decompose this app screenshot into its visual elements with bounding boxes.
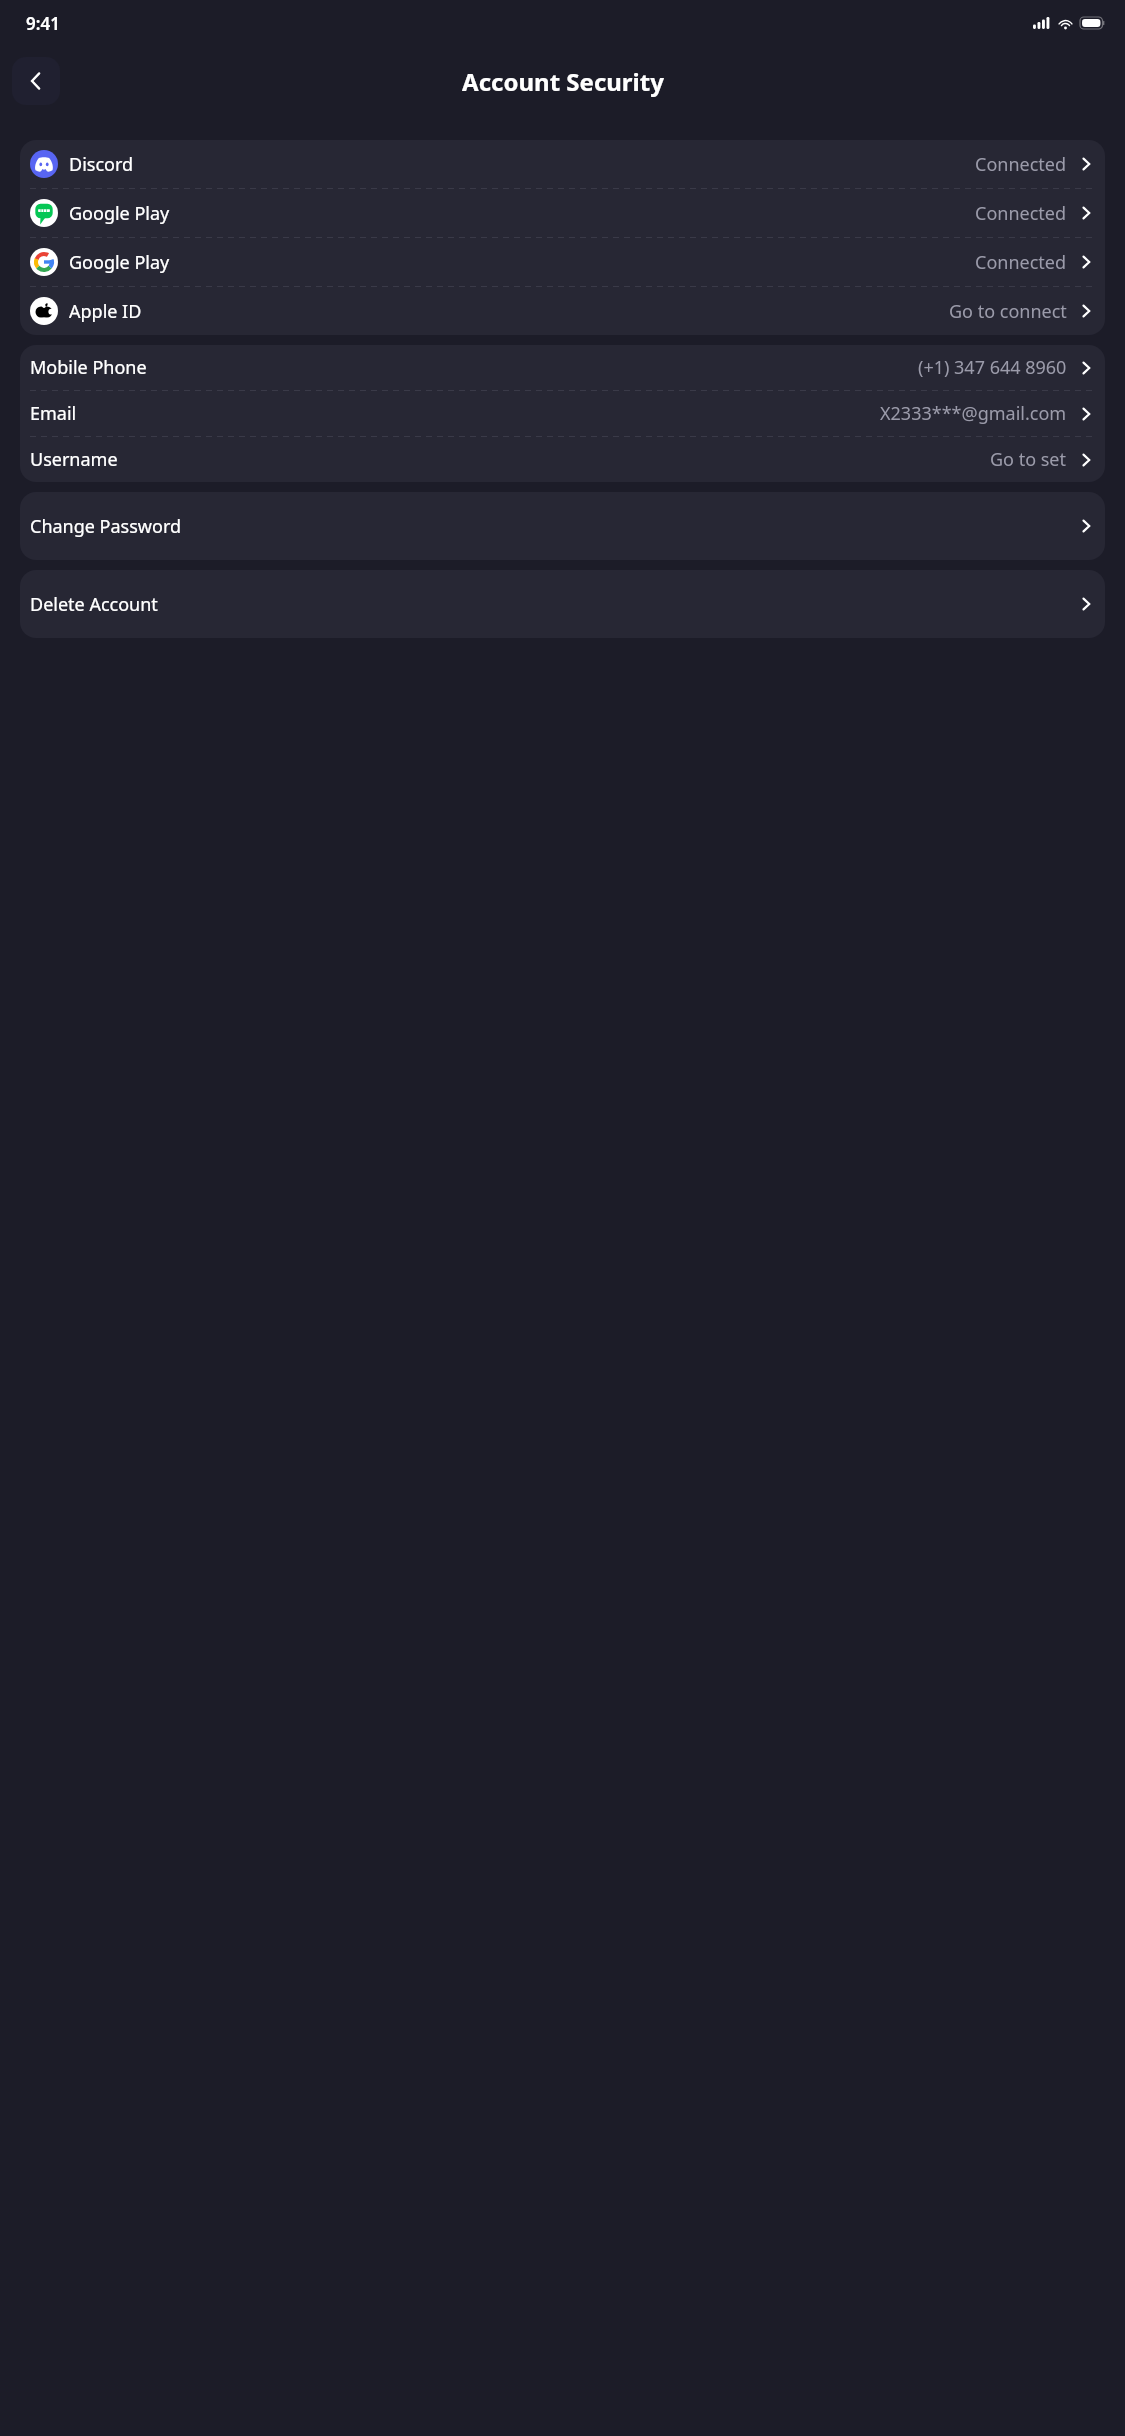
staticText: Apple ID	[69, 299, 142, 324]
staticText: 9:41	[26, 12, 60, 35]
staticText: Connected	[975, 152, 1067, 177]
staticText: Change Password	[30, 514, 182, 539]
staticText: Delete Account	[30, 592, 158, 617]
staticText: Connected	[975, 201, 1067, 226]
staticText: Go to connect	[949, 299, 1067, 324]
button[interactable]: Discord	[20, 140, 1105, 188]
staticText: (+1) 347 644 8960	[918, 355, 1067, 380]
button[interactable]: Back	[12, 57, 60, 105]
button[interactable]: Delete Account	[20, 570, 1105, 638]
button[interactable]: Apple ID	[20, 287, 1105, 335]
staticText: Discord	[69, 152, 134, 177]
staticText: Google Play	[69, 201, 170, 226]
button[interactable]: Username	[20, 437, 1105, 482]
staticText: Google Play	[69, 250, 170, 275]
staticText: Connected	[975, 250, 1067, 275]
button[interactable]: Mobile Phone	[20, 345, 1105, 390]
button[interactable]: Google Play	[20, 189, 1105, 237]
staticText: Email	[30, 401, 77, 426]
button[interactable]: Google Play	[20, 238, 1105, 286]
button[interactable]: Change Password	[20, 492, 1105, 560]
staticText: Username	[30, 447, 118, 472]
staticText: Go to set	[990, 447, 1067, 472]
staticText: X2333***@gmail.com	[880, 401, 1067, 426]
staticText: Mobile Phone	[30, 355, 147, 380]
button[interactable]: Email	[20, 391, 1105, 436]
staticText: Account Security	[462, 65, 664, 98]
